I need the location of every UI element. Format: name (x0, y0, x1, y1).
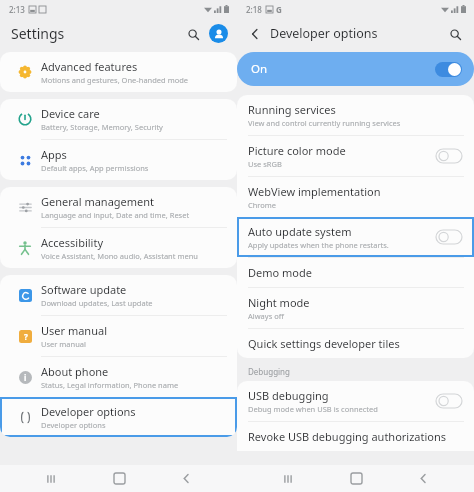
staticText: Advanced features (41, 59, 138, 74)
button[interactable]: Home (102, 465, 136, 492)
staticText: Apps (41, 147, 67, 162)
staticText: Developer options (270, 25, 378, 42)
staticText: ? (24, 331, 28, 342)
button[interactable]: Quick settings developer tiles (237, 329, 474, 358)
staticText: Night mode (248, 295, 310, 310)
staticText: View and control currently running servi… (248, 118, 401, 128)
staticText: G (276, 4, 282, 15)
staticText: Quick settings developer tiles (248, 336, 400, 351)
button[interactable]: Running services (237, 95, 474, 135)
staticText: User manual (41, 323, 107, 338)
staticText: Voice Assistant, Mono audio, Assistant m… (41, 251, 198, 261)
button[interactable]: Apps (0, 140, 237, 180)
button[interactable]: Picture color mode (436, 149, 462, 163)
button[interactable]: Demo mode (237, 258, 474, 287)
staticText: WebView implementation (248, 184, 381, 199)
staticText: Auto update system (248, 224, 352, 239)
button[interactable]: Search (182, 23, 204, 45)
staticText: Developer options (41, 404, 136, 419)
button[interactable]: On (237, 52, 474, 86)
button[interactable]: USB debugging (237, 381, 474, 421)
staticText: Chrome (248, 200, 277, 210)
staticText: Demo mode (248, 265, 312, 280)
staticText: Settings (11, 24, 65, 43)
staticText: Debugging (248, 366, 290, 377)
staticText: Use sRGB (248, 159, 282, 169)
button[interactable]: Picture color mode (237, 136, 474, 176)
staticText: Device care (41, 106, 100, 121)
button[interactable]: Revoke USB debugging authorizations (237, 422, 474, 451)
button[interactable]: General management (0, 187, 237, 227)
staticText: Debug mode when USB is connected (248, 404, 378, 414)
button[interactable]: ? (0, 316, 237, 356)
button[interactable]: Back (406, 465, 440, 492)
staticText: General management (41, 194, 155, 209)
button[interactable]: Accessibility (0, 228, 237, 268)
button[interactable]: Developer options on (435, 62, 462, 77)
staticText: 2:13 (9, 4, 25, 15)
staticText: USB debugging (248, 388, 329, 403)
button[interactable]: Recents (34, 465, 68, 492)
button[interactable]: Advanced features (0, 52, 237, 92)
staticText: i (24, 372, 27, 383)
staticText: Revoke USB debugging authorizations (248, 429, 447, 444)
staticText: Running services (248, 102, 336, 117)
staticText: Download updates, Last update (41, 298, 153, 308)
button[interactable]: Home (339, 465, 373, 492)
staticText: Battery, Storage, Memory, Security (41, 122, 163, 132)
button[interactable]: Back (245, 24, 265, 44)
staticText: About phone (41, 364, 109, 379)
button[interactable]: Recents (271, 465, 305, 492)
staticText: User manual (41, 339, 86, 349)
staticText: Default apps, App permissions (41, 163, 149, 173)
button[interactable]: Device care (0, 99, 237, 139)
button[interactable]: WebView implementation (237, 177, 474, 217)
staticText: Status, Legal information, Phone name (41, 380, 179, 390)
button[interactable]: Night mode (237, 288, 474, 328)
staticText: Picture color mode (248, 143, 346, 158)
button[interactable]: Account (209, 24, 228, 43)
button[interactable]: USB debugging (436, 394, 462, 408)
button[interactable]: Developer options (0, 397, 237, 437)
staticText: 2:18 (246, 4, 262, 15)
button[interactable]: Software update (0, 275, 237, 315)
staticText: Apply updates when the phone restarts. (248, 240, 389, 250)
button[interactable]: Auto update system (237, 217, 474, 257)
button[interactable]: Auto update system (436, 230, 462, 244)
button[interactable]: Search (445, 24, 465, 44)
staticText: On (251, 61, 268, 77)
staticText: Accessibility (41, 235, 104, 250)
button[interactable]: Back (169, 465, 203, 492)
staticText: Motions and gestures, One-handed mode (41, 75, 189, 85)
staticText: Developer options (41, 420, 106, 430)
staticText: Software update (41, 282, 127, 297)
staticText: Always off (248, 311, 284, 321)
staticText: Language and input, Date and time, Reset (41, 210, 190, 220)
button[interactable]: i (0, 357, 237, 397)
